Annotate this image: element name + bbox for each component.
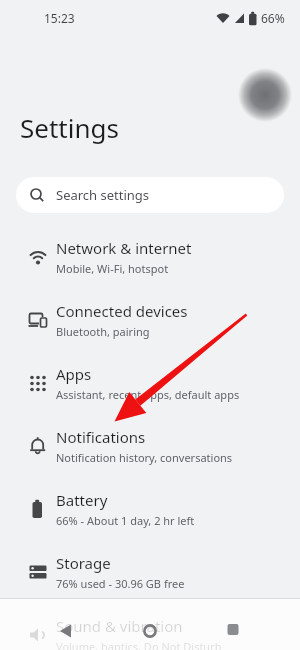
staticText: Connected devices bbox=[56, 301, 188, 321]
staticText: Settings bbox=[20, 110, 119, 145]
button[interactable]: Notifications bbox=[0, 414, 300, 477]
staticText: Search settings bbox=[56, 186, 150, 204]
staticText: Bluetooth, pairing bbox=[56, 324, 150, 339]
button[interactable]: Network & internet bbox=[0, 225, 300, 288]
staticText: Network & internet bbox=[56, 238, 192, 258]
button[interactable] bbox=[219, 616, 247, 644]
staticText: Notifications bbox=[56, 427, 146, 447]
staticText: Apps bbox=[56, 364, 92, 384]
button[interactable]: Sound & vibration bbox=[0, 603, 300, 650]
staticText: Mobile, Wi-Fi, hotspot bbox=[56, 261, 169, 276]
staticText: Sound & vibration bbox=[56, 616, 183, 636]
button[interactable] bbox=[238, 68, 292, 122]
staticText: Storage bbox=[56, 553, 111, 573]
staticText: 66% bbox=[261, 10, 285, 26]
button[interactable] bbox=[52, 617, 80, 645]
button[interactable]: Search settings bbox=[16, 177, 284, 213]
staticText: Assistant, recent apps, default apps bbox=[56, 387, 240, 402]
staticText: Battery bbox=[56, 490, 108, 510]
staticText: 15:23 bbox=[44, 10, 75, 26]
button[interactable] bbox=[136, 617, 164, 645]
staticText: Volume, haptics, Do Not Disturb bbox=[56, 639, 222, 650]
button[interactable]: Apps bbox=[0, 351, 300, 414]
button[interactable]: Connected devices bbox=[0, 288, 300, 351]
staticText: 66% - About 1 day, 2 hr left bbox=[56, 513, 195, 528]
button[interactable]: Battery bbox=[0, 477, 300, 540]
staticText: Notification history, conversations bbox=[56, 450, 233, 465]
staticText: 76% used - 30.96 GB free bbox=[56, 576, 185, 591]
button[interactable]: Storage bbox=[0, 540, 300, 603]
